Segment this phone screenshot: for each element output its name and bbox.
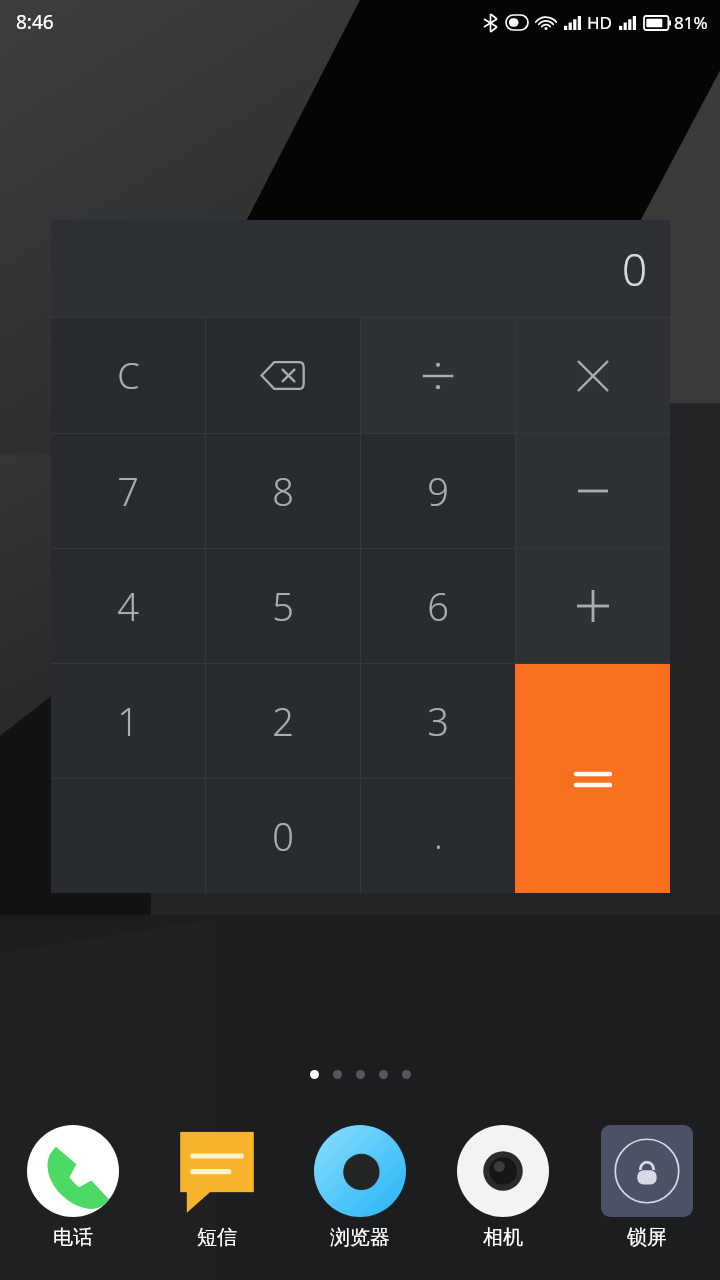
button[interactable]: Phone (3, 1125, 143, 1250)
staticText: 5 (272, 580, 294, 632)
staticText: HD (587, 11, 613, 34)
button[interactable]: Minus (516, 434, 670, 548)
staticText: 0 (272, 810, 294, 862)
staticText: 8 (272, 465, 294, 517)
staticText: 1 (117, 695, 139, 747)
staticText: . (434, 813, 443, 859)
staticText: 3 (427, 695, 449, 747)
button[interactable]: 3 (361, 664, 515, 778)
button[interactable]: 6 (361, 549, 515, 663)
staticText: 浏览器 (330, 1225, 390, 1250)
staticText: 0 (622, 239, 648, 299)
staticText: 6 (427, 580, 449, 632)
button[interactable]: Divide (361, 318, 515, 433)
staticText: C (117, 351, 140, 400)
button[interactable]: Backspace (206, 318, 360, 433)
button[interactable]: 1 (51, 664, 205, 778)
staticText: 短信 (197, 1225, 237, 1250)
button[interactable]: 9 (361, 434, 515, 548)
button[interactable]: Messages (147, 1125, 287, 1250)
staticText: 相机 (483, 1225, 523, 1250)
staticText: 4 (117, 580, 139, 632)
staticText: 电话 (53, 1225, 93, 1250)
staticText: 8:46 (16, 9, 54, 35)
staticText: 9 (427, 465, 449, 517)
button[interactable]: 2 (206, 664, 360, 778)
button[interactable]: Multiply (516, 318, 670, 433)
button[interactable]: 0 (206, 779, 360, 893)
button[interactable]: Browser (290, 1125, 430, 1250)
staticText: 7 (117, 465, 139, 517)
button[interactable]: Plus (516, 549, 670, 663)
button[interactable]: Camera (433, 1125, 573, 1250)
button[interactable]: 7 (51, 434, 205, 548)
button[interactable]: 0 (51, 220, 670, 317)
button[interactable]: C (51, 318, 205, 433)
button[interactable]: Equals (515, 664, 670, 893)
button[interactable]: 4 (51, 549, 205, 663)
staticText: 81% (674, 11, 708, 34)
button[interactable]: Lock screen (577, 1125, 717, 1250)
button[interactable]: 8 (206, 434, 360, 548)
button[interactable]: 5 (206, 549, 360, 663)
staticText: 锁屏 (627, 1225, 667, 1250)
staticText: 2 (272, 695, 294, 747)
